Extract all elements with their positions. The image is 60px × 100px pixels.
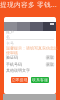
button[interactable]: 立即提现: [11, 77, 28, 83]
staticText: 账户名: [6, 30, 14, 39]
staticText: 获取: [46, 55, 54, 60]
staticText: 验证码: [6, 55, 18, 60]
staticText: 手机号码: [6, 62, 22, 67]
staticText: 其他说明文字: [6, 68, 30, 73]
staticText: 提现内容多 零钱不愁: [0, 0, 60, 9]
staticText: 立即提现: [11, 77, 27, 82]
button[interactable]: 获取: [46, 55, 54, 59]
staticText: 获取: [46, 62, 54, 67]
button[interactable]: 获取: [46, 62, 54, 66]
staticText: 卡号: [6, 41, 14, 46]
staticText: 联系客服: [32, 77, 48, 82]
staticText: 温馨提示：请填写真实信息以便审核: [6, 46, 58, 55]
button[interactable]: 联系客服: [31, 77, 49, 83]
